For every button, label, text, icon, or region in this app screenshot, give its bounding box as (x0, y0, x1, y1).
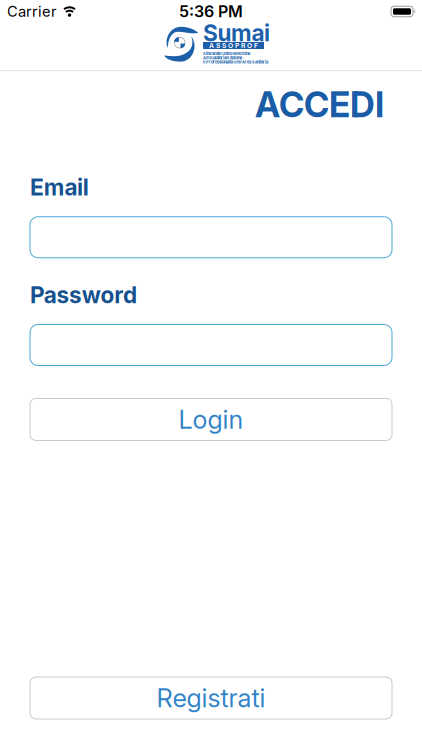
staticText: ACCEDI (255, 84, 384, 125)
button[interactable]: Login (30, 398, 392, 440)
staticText: Sindacato Unico Medicina (203, 51, 250, 56)
staticText: Password (30, 282, 137, 308)
staticText: Email (30, 174, 89, 201)
staticText: Sumai (203, 20, 270, 46)
staticText: Carrier (7, 3, 57, 20)
staticText: A S S O P R O F (209, 42, 258, 49)
staticText: Registrati (156, 683, 265, 713)
button[interactable]: Registrati (30, 677, 392, 719)
staticText: Login (178, 404, 243, 434)
staticText: 5:36 PM (179, 2, 243, 21)
staticText: Ambulatoriale Italiana (203, 55, 242, 60)
staticText: e Professionalità dell'Area Sanitaria (203, 60, 268, 64)
